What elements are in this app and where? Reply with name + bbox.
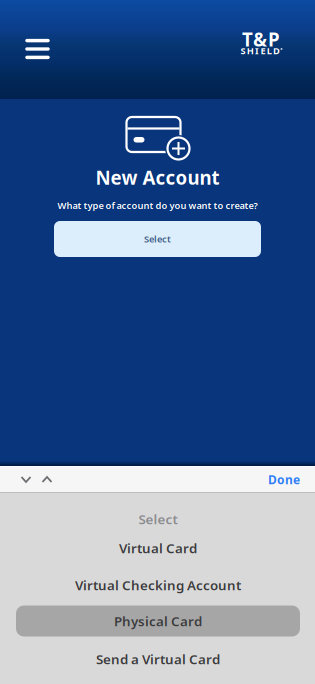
staticText: Virtual Card [119,539,197,557]
staticText: New Account [95,165,219,190]
button[interactable]: Send a Virtual Card [8,646,308,672]
staticText: Select [138,510,177,528]
button[interactable]: Next field [33,466,61,493]
button[interactable]: Open menu [15,27,59,71]
staticText: What type of account do you want to crea… [57,199,257,212]
staticText: Physical Card [114,612,202,630]
button[interactable]: Select [8,506,308,532]
button[interactable]: Done [252,466,300,493]
button[interactable]: Virtual Card [8,535,308,561]
staticText: Select [144,233,171,245]
staticText: Virtual Checking Account [75,576,241,594]
button[interactable]: Select [54,221,261,257]
staticText: Send a Virtual Card [96,650,220,668]
staticText: SHIELD [240,45,280,57]
button[interactable]: Previous field [12,466,40,493]
staticText: T&P [242,27,280,52]
button[interactable]: Physical Card [8,608,308,634]
button[interactable]: Virtual Checking Account [8,572,308,598]
staticText: Done [268,471,300,487]
